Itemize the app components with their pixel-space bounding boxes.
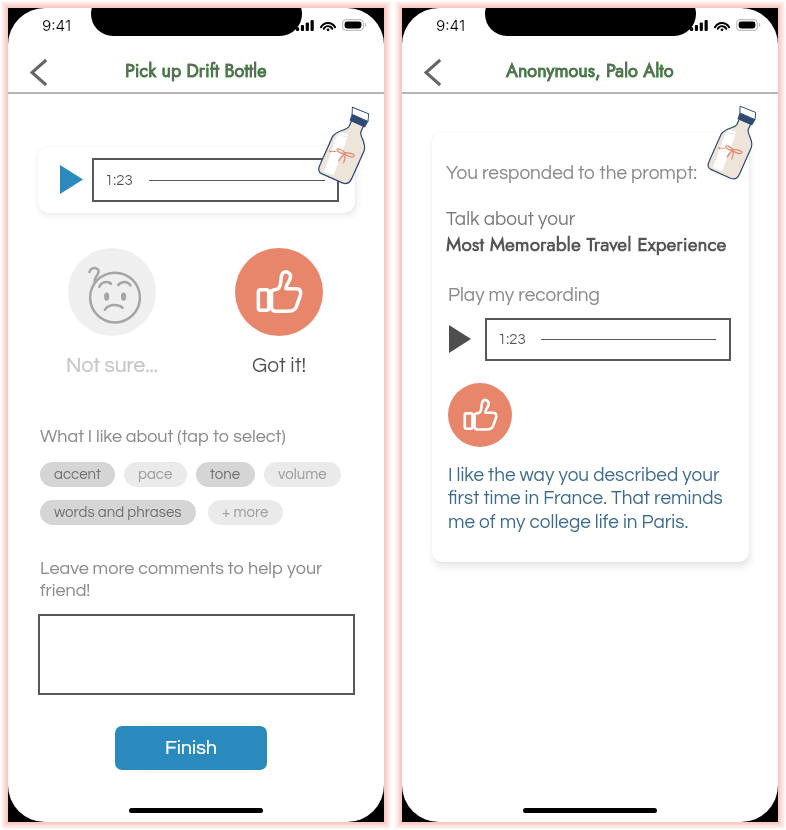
staticText: accent (54, 467, 101, 482)
button[interactable]: tone (196, 462, 255, 487)
button[interactable]: Back (412, 51, 454, 93)
staticText: Got it! (252, 355, 307, 377)
staticText: 1:23 (105, 173, 133, 188)
staticText: Pick up Drift Bottle (125, 58, 267, 84)
staticText: Play my recording (448, 285, 600, 305)
staticText: I like the way you described your first … (448, 465, 723, 532)
button[interactable] (38, 614, 355, 695)
button[interactable]: pace (124, 462, 187, 487)
staticText: Not sure... (66, 355, 159, 377)
staticText: Leave more comments to help your friend! (40, 559, 323, 600)
button[interactable]: Got it (235, 248, 323, 336)
button[interactable]: Back (18, 51, 60, 93)
button[interactable]: Finish (115, 726, 267, 770)
button[interactable]: Play recording (38, 147, 355, 213)
staticText: Ag (0, 20, 11, 30)
staticText: 1:23 (498, 332, 526, 347)
staticText: Talk about your (446, 209, 576, 229)
button[interactable]: words and phrases (40, 500, 196, 525)
button[interactable]: volume (264, 462, 341, 487)
other: Play recording (449, 325, 471, 353)
staticText: tone (210, 467, 241, 482)
button[interactable] (448, 383, 512, 447)
staticText: Most Memorable Travel Experience (446, 231, 727, 258)
staticText: Finish (165, 738, 218, 759)
staticText: Ag (0, 12, 11, 20)
other: Play recording (60, 165, 83, 194)
staticText: + more (222, 505, 269, 520)
button[interactable]: 1:23 (485, 318, 731, 361)
staticText: Pick up Drift Bottle (125, 58, 267, 84)
staticText: words and phrases (54, 505, 182, 520)
staticText: What I like about (tap to select) (40, 427, 286, 446)
staticText: 9:41 (42, 16, 72, 34)
staticText: Anonymous, Palo Alto (506, 58, 674, 84)
staticText: You responded to the prompt: (446, 163, 698, 183)
staticText: Anonymous, Palo Alto (506, 58, 674, 84)
button[interactable]: Not sure (68, 248, 156, 336)
staticText: volume (278, 467, 327, 482)
button[interactable]: + more (208, 500, 283, 525)
staticText: pace (138, 467, 173, 482)
button[interactable]: accent (40, 462, 115, 487)
staticText: Ag (0, 0, 10, 12)
staticText: 9:41 (436, 16, 466, 34)
